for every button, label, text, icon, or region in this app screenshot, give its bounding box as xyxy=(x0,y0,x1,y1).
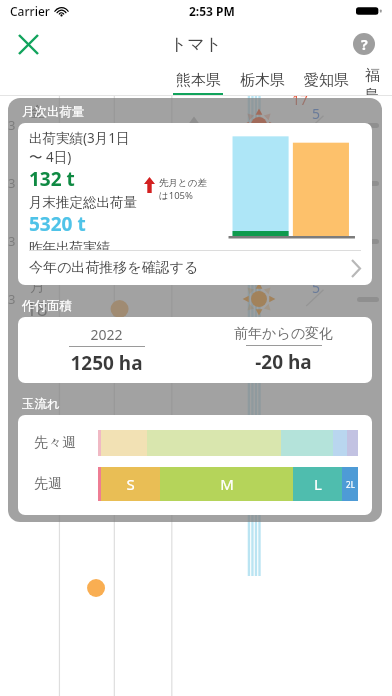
staticText: 3 xyxy=(8,174,16,192)
button[interactable]: 閉じる xyxy=(6,22,50,66)
staticText: は105% xyxy=(159,189,193,202)
staticText: 昨年出荷実績 xyxy=(29,239,110,250)
button[interactable]: 熊本県 xyxy=(173,71,223,96)
staticText: 熊本県 xyxy=(176,71,221,90)
staticText: 金 xyxy=(30,103,45,122)
button[interactable]: 栃木県 xyxy=(237,71,287,96)
staticText: 前年からの変化 xyxy=(234,325,333,343)
staticText: 18 xyxy=(26,296,48,322)
staticText: L xyxy=(314,474,322,494)
button[interactable]: 2022 xyxy=(18,317,372,383)
staticText: 先々週 xyxy=(34,434,76,452)
staticText: 3 xyxy=(8,232,16,250)
staticText: 愛知県 xyxy=(304,71,349,90)
staticText: 玉流れ xyxy=(22,396,60,412)
button[interactable]: 今年の出荷推移を確認する xyxy=(18,251,372,285)
staticText: 作付面積 xyxy=(22,298,72,314)
staticText: 15 xyxy=(26,122,48,148)
button[interactable]: 先々週 xyxy=(18,415,372,515)
staticText: 2022 xyxy=(90,325,123,344)
staticText: 5 xyxy=(312,278,321,297)
staticText: 1250 ha xyxy=(70,350,143,376)
staticText: 17 xyxy=(292,90,309,109)
staticText: 福島 xyxy=(365,66,385,96)
staticText: 土 xyxy=(30,161,45,180)
staticText: 14 xyxy=(292,206,309,225)
staticText: 先週 xyxy=(34,475,62,493)
staticText: 月末推定総出荷量 xyxy=(29,194,137,211)
staticText: 300t xyxy=(118,334,148,353)
staticText: 16 xyxy=(292,148,309,167)
staticText: 6 xyxy=(312,220,321,239)
staticText: 132 t xyxy=(29,166,75,192)
staticText: 出荷実績(3月1日 〜 4日) xyxy=(29,129,144,166)
staticText: 17 xyxy=(26,238,48,264)
staticText: 3 xyxy=(8,290,16,308)
staticText: 日 xyxy=(30,219,45,238)
staticText: 2:53 PM xyxy=(189,3,235,19)
button[interactable]: 福島 xyxy=(365,66,385,96)
staticText: 月次出荷量 xyxy=(22,104,85,120)
button[interactable]: ヘルプ xyxy=(342,22,386,66)
staticText: -20 ha xyxy=(255,349,312,375)
staticText: M xyxy=(220,474,234,494)
staticText: トマト xyxy=(170,34,223,55)
staticText: ? xyxy=(361,35,368,54)
staticText: 3 xyxy=(8,116,16,134)
staticText: 16 xyxy=(26,180,48,206)
staticText: 栃木県 xyxy=(240,71,285,90)
staticText: S xyxy=(126,474,135,494)
staticText: 今年の出荷推移を確認する xyxy=(29,259,199,277)
staticText: Carrier xyxy=(10,3,50,19)
staticText: 2L xyxy=(346,479,355,490)
button[interactable]: 愛知県 xyxy=(301,71,351,96)
staticText: 5320 t xyxy=(29,211,86,237)
staticText: 5 xyxy=(312,104,321,123)
staticText: 月 xyxy=(30,277,45,296)
staticText: 先月との差 xyxy=(159,177,207,189)
